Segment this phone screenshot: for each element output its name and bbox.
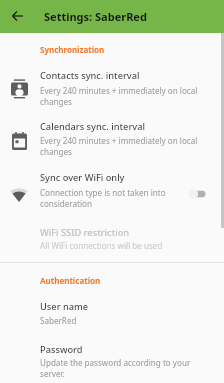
button[interactable]: Contacts sync. interval xyxy=(0,64,224,115)
button[interactable]: Calendars sync. interval xyxy=(0,115,224,166)
staticText: Every 240 minutes + immediately on local… xyxy=(40,85,202,107)
staticText: Synchronization xyxy=(40,44,105,55)
button[interactable]: User name xyxy=(0,295,224,338)
staticText: Connection type is not taken into consid… xyxy=(40,187,186,209)
staticText: Calendars sync. interval xyxy=(40,120,145,133)
button[interactable]: Navigate up xyxy=(0,0,33,33)
staticText: Password xyxy=(40,343,83,356)
staticText: Authentication xyxy=(40,275,101,286)
button[interactable]: WiFi SSID restriction xyxy=(0,221,224,262)
staticText: Every 240 minutes + immediately on local… xyxy=(40,135,202,157)
staticText: User name xyxy=(40,300,89,313)
staticText: SaberRed xyxy=(40,315,77,326)
staticText: Update the password according to your se… xyxy=(40,357,202,379)
staticText: All WiFi connections will be used xyxy=(40,240,163,251)
staticText: WiFi SSID restriction xyxy=(40,226,130,239)
button[interactable]: Password xyxy=(0,338,224,383)
button[interactable]: Sync over WiFi only toggle xyxy=(187,188,207,200)
staticText: Sync over WiFi only xyxy=(40,171,125,184)
button[interactable]: Sync over WiFi only toggle xyxy=(0,166,224,221)
staticText: Contacts sync. interval xyxy=(40,69,140,82)
staticText: Settings: SaberRed xyxy=(44,9,147,24)
